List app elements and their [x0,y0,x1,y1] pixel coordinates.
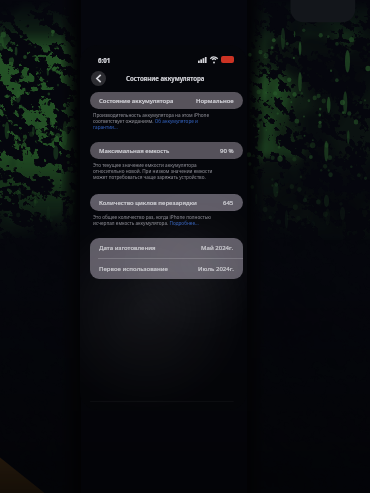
staticText: Состояние аккумулятора [99,97,174,105]
button[interactable]: Количество циклов перезарядки [90,194,243,211]
staticText: Это общее количество раз, когда iPhone п… [93,214,217,226]
staticText: Май 2024г. [201,244,234,252]
staticText: Июль 2024г. [198,265,234,273]
button[interactable]: Первое использование [90,259,243,279]
staticText: Дата изготовления [99,244,156,252]
staticText: Это текущее значение емкости аккумулятор… [93,162,219,180]
button[interactable]: Back [91,71,106,86]
staticText: Количество циклов перезарядки [99,199,197,207]
staticText: Первое использование [99,265,168,273]
staticText: 6:01 [98,56,111,64]
staticText: Производительность аккумулятора на этом … [93,112,211,130]
button[interactable]: Дата изготовления [90,238,243,258]
button[interactable]: Состояние аккумулятора [90,92,243,109]
staticText: Максимальная емкость [99,147,170,155]
staticText: Нормальное [196,97,234,105]
staticText: 645 [223,199,234,207]
staticText: Состояние аккумулятора [126,74,205,82]
staticText: 90 % [220,147,234,155]
button[interactable]: Максимальная емкость [90,142,243,159]
